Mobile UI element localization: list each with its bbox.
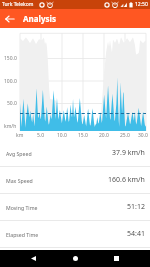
staticText: 150.0 [4,55,17,62]
button[interactable]: Elapsed Time [0,221,150,247]
button[interactable]: Home [67,250,84,267]
staticText: Turk Telekom [2,1,34,8]
button[interactable]: Back [0,9,19,28]
staticText: 37.9 km/h [112,148,145,158]
staticText: Elapsed Time [6,231,39,238]
button[interactable]: Avg Speed [0,140,150,166]
staticText: 15.0 [78,132,88,139]
staticText: 30.0 [138,132,148,139]
staticText: 100.0 [4,78,17,85]
staticText: 25.0 [120,132,130,139]
staticText: Analysis [23,13,56,24]
staticText: 12:50 [135,1,148,8]
staticText: 160.6 km/h [108,175,145,185]
staticText: 54:41 [127,229,145,239]
staticText: Max Speed [6,177,33,184]
staticText: km [16,132,24,139]
staticText: 51:12 [127,202,145,212]
staticText: Moving Time [6,204,38,211]
button[interactable]: Back [25,250,42,267]
button[interactable]: Moving Time [0,194,150,220]
staticText: 5.0 [37,132,45,139]
button[interactable]: Recent apps [108,250,125,267]
staticText: 50.0 [7,100,17,107]
staticText: km/h [4,123,17,130]
button[interactable]: Max Speed [0,167,150,193]
staticText: 10.0 [57,132,67,139]
staticText: Avg Speed [6,150,32,157]
staticText: 20.0 [99,132,109,139]
